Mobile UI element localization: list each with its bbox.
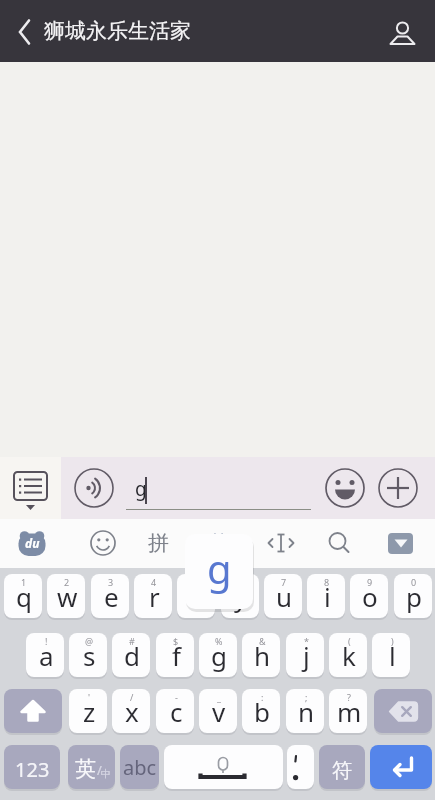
- button[interactable]: 6: [221, 574, 259, 618]
- staticText: /: [130, 691, 134, 703]
- button[interactable]: *: [286, 633, 324, 677]
- button[interactable]: du: [10, 521, 54, 565]
- button[interactable]: %: [199, 633, 237, 677]
- button[interactable]: g: [122, 465, 318, 513]
- button[interactable]: 英: [68, 745, 115, 789]
- staticText: d: [124, 638, 140, 673]
- staticText: *: [304, 635, 309, 647]
- button[interactable]: @: [69, 633, 107, 677]
- staticText: u: [276, 579, 293, 614]
- button[interactable]: ): [372, 633, 410, 677]
- button[interactable]: &: [242, 633, 280, 677]
- staticText: c: [170, 694, 183, 729]
- staticText: !: [45, 635, 48, 647]
- staticText: 狮城永乐生活家: [44, 18, 191, 44]
- button[interactable]: !: [26, 633, 64, 677]
- staticText: e: [104, 579, 119, 614]
- button[interactable]: ;: [286, 689, 324, 733]
- button[interactable]: [380, 10, 424, 54]
- staticText: j: [303, 638, 310, 673]
- button[interactable]: /: [112, 689, 150, 733]
- button[interactable]: ?: [329, 689, 367, 733]
- staticText: du: [25, 535, 40, 551]
- staticText: /: [97, 761, 102, 779]
- button[interactable]: 1: [4, 574, 42, 618]
- staticText: 英: [75, 756, 96, 782]
- staticText: ': [88, 691, 91, 703]
- staticText: &: [259, 635, 266, 647]
- button[interactable]: [259, 521, 303, 565]
- button[interactable]: [317, 521, 361, 565]
- button[interactable]: [6, 12, 44, 52]
- button[interactable]: 英: [197, 521, 241, 565]
- staticText: 拼: [148, 530, 169, 556]
- button[interactable]: #: [112, 633, 150, 677]
- button[interactable]: [287, 745, 314, 789]
- staticText: 8: [324, 576, 330, 588]
- button[interactable]: [164, 745, 283, 789]
- staticText: (: [348, 635, 351, 647]
- staticText: t: [192, 579, 202, 614]
- button[interactable]: [378, 521, 422, 565]
- staticText: ?: [347, 691, 351, 703]
- button[interactable]: ': [69, 689, 107, 733]
- button[interactable]: 4: [134, 574, 172, 618]
- staticText: 3: [108, 576, 114, 588]
- staticText: p: [406, 579, 422, 614]
- staticText: -: [175, 691, 178, 703]
- staticText: abc: [123, 754, 157, 781]
- button[interactable]: 8: [307, 574, 345, 618]
- staticText: q: [16, 579, 32, 614]
- staticText: h: [254, 638, 271, 673]
- button[interactable]: 符: [319, 745, 365, 789]
- button[interactable]: [370, 745, 432, 789]
- button[interactable]: 3: [91, 574, 129, 618]
- button[interactable]: _: [199, 689, 237, 733]
- button[interactable]: 7: [264, 574, 302, 618]
- staticText: 4: [151, 576, 157, 588]
- button[interactable]: [0, 457, 61, 519]
- button[interactable]: [325, 468, 365, 508]
- button[interactable]: 拼: [136, 521, 180, 565]
- staticText: y: [234, 579, 248, 614]
- staticText: ;: [305, 691, 308, 703]
- staticText: 2: [64, 576, 70, 588]
- staticText: 英: [209, 531, 229, 556]
- staticText: x: [125, 694, 139, 729]
- button[interactable]: (: [329, 633, 367, 677]
- staticText: g: [207, 541, 232, 595]
- button[interactable]: [74, 468, 114, 508]
- button[interactable]: 123: [4, 745, 60, 789]
- staticText: v: [212, 694, 226, 729]
- staticText: g: [135, 476, 147, 502]
- staticText: o: [362, 579, 378, 614]
- button[interactable]: [81, 521, 125, 565]
- staticText: :: [261, 691, 264, 703]
- button[interactable]: 9: [350, 574, 388, 618]
- button[interactable]: $: [156, 633, 194, 677]
- staticText: _: [217, 691, 221, 703]
- staticText: f: [172, 638, 181, 673]
- staticText: 123: [15, 756, 50, 783]
- button[interactable]: :: [242, 689, 280, 733]
- button[interactable]: [374, 689, 432, 733]
- button[interactable]: [378, 468, 418, 508]
- button[interactable]: abc: [120, 745, 159, 789]
- button[interactable]: 5: [177, 574, 215, 618]
- staticText: ): [391, 635, 394, 647]
- button[interactable]: [4, 689, 62, 733]
- button[interactable]: 0: [394, 574, 432, 618]
- staticText: 9: [367, 576, 373, 588]
- staticText: @: [85, 635, 94, 647]
- staticText: 0: [411, 576, 417, 588]
- staticText: w: [57, 579, 78, 614]
- staticText: 7: [281, 576, 287, 588]
- staticText: a: [39, 638, 54, 673]
- staticText: s: [83, 638, 96, 673]
- staticText: 1: [21, 576, 27, 588]
- staticText: r: [149, 579, 160, 614]
- button[interactable]: 2: [47, 574, 85, 618]
- button[interactable]: -: [156, 689, 194, 733]
